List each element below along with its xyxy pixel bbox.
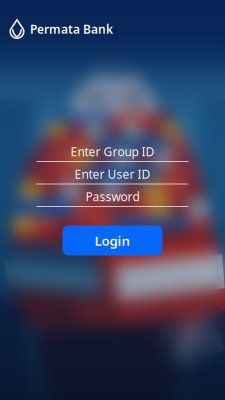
button[interactable]: Password	[36, 190, 188, 212]
button[interactable]: Enter User ID	[36, 167, 188, 190]
staticText: Password	[85, 188, 139, 204]
staticText: Enter User ID	[74, 166, 150, 182]
staticText: Enter Group ID	[70, 143, 154, 159]
button[interactable]: Enter Group ID	[36, 145, 188, 167]
staticText: Login	[94, 232, 130, 249]
staticText: Permata Bank	[30, 21, 113, 37]
button[interactable]: Login	[62, 225, 162, 255]
